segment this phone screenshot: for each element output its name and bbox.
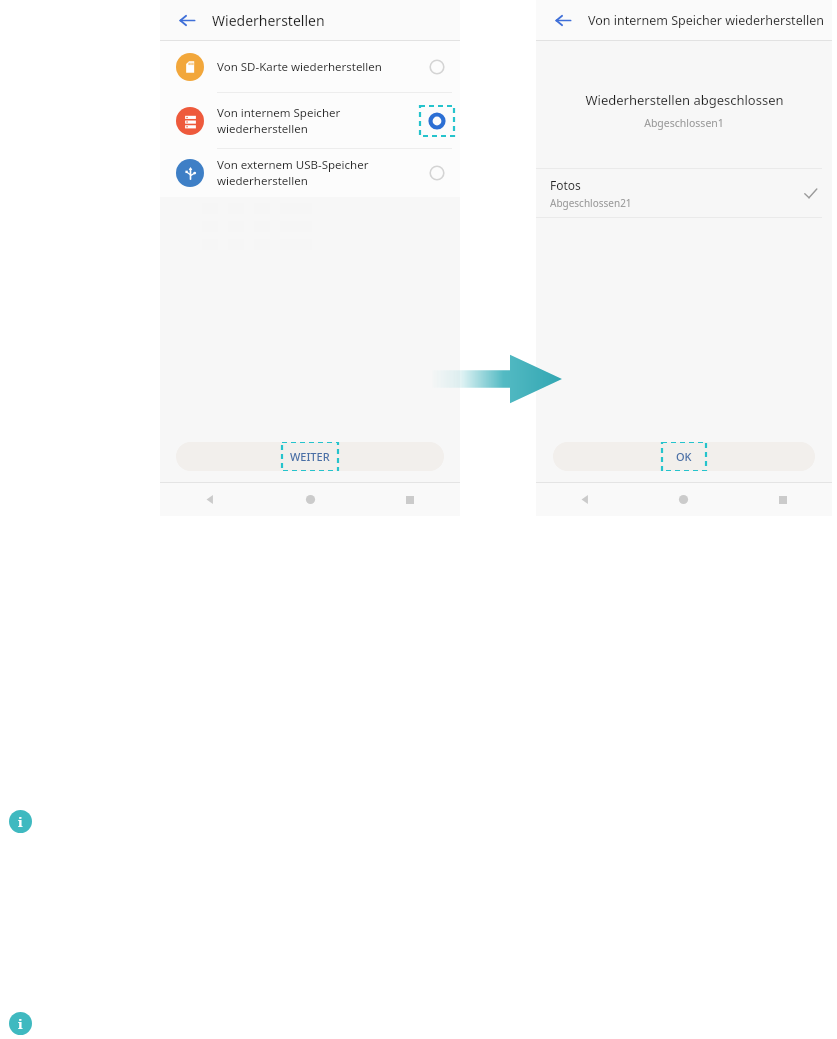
staticText: Fotos [550, 177, 581, 193]
staticText: wiederherstellen [217, 121, 308, 137]
button[interactable]: Recents [733, 483, 832, 516]
button[interactable]: Von internem Speicher [160, 93, 460, 148]
button[interactable]: Back [160, 483, 260, 516]
button[interactable]: Back [536, 483, 634, 516]
button[interactable]: Back [550, 7, 576, 33]
button[interactable]: WEITER [176, 442, 444, 471]
staticText: Wiederherstellen abgeschlossen [585, 91, 784, 109]
button[interactable]: Info [9, 1012, 32, 1035]
staticText: i [18, 1015, 23, 1033]
button[interactable]: Info [9, 810, 32, 833]
button[interactable]: OK [553, 442, 815, 471]
staticText: Von internem Speicher wiederherstellen [588, 12, 824, 29]
staticText: Wiederherstellen [212, 11, 325, 30]
button[interactable]: Recents [360, 483, 460, 516]
staticText: Von SD-Karte wiederherstellen [217, 59, 382, 75]
button[interactable]: Fotos [536, 169, 832, 217]
staticText: Abgeschlossen21 [550, 196, 632, 210]
staticText: Von internem Speicher [217, 105, 341, 121]
staticText: wiederherstellen [217, 173, 308, 189]
staticText: WEITER [290, 449, 330, 464]
button[interactable]: Home [634, 483, 733, 516]
button[interactable]: Von externem USB-Speicher [160, 149, 460, 197]
button[interactable]: Von SD-Karte wiederherstellen [160, 41, 460, 92]
staticText: OK [676, 449, 692, 464]
staticText: i [18, 813, 23, 831]
button[interactable]: Home [260, 483, 360, 516]
staticText: Von externem USB-Speicher [217, 157, 369, 173]
staticText: Abgeschlossen1 [644, 116, 724, 130]
button[interactable]: Back [174, 7, 200, 33]
